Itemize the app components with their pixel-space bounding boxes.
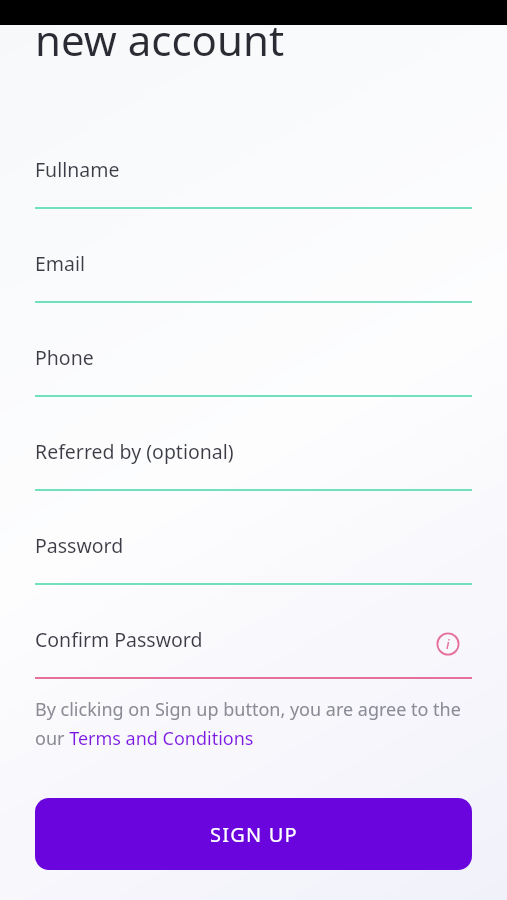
button[interactable]: Referred by (optional) bbox=[0, 397, 507, 491]
staticText: Fullname bbox=[35, 156, 120, 183]
staticText: Confirm Password bbox=[35, 626, 203, 653]
staticText: SIGN UP bbox=[210, 821, 298, 848]
button[interactable]: SIGN UP bbox=[35, 798, 472, 870]
button[interactable]: Password error information bbox=[436, 632, 460, 656]
staticText: Password bbox=[35, 532, 124, 559]
staticText: new account bbox=[35, 11, 285, 68]
button[interactable]: Email bbox=[0, 209, 507, 303]
button[interactable]: By clicking on Sign up button, you are a… bbox=[35, 697, 472, 750]
staticText: Email bbox=[35, 250, 86, 277]
button[interactable]: Password bbox=[0, 491, 507, 585]
button[interactable]: Phone bbox=[0, 303, 507, 397]
button[interactable]: Confirm Password bbox=[0, 585, 507, 679]
staticText: i bbox=[446, 635, 450, 653]
staticText: Referred by (optional) bbox=[35, 438, 234, 465]
button[interactable]: Fullname bbox=[0, 115, 507, 209]
staticText: By clicking on Sign up button, you are a… bbox=[35, 697, 472, 750]
staticText: Phone bbox=[35, 344, 94, 371]
